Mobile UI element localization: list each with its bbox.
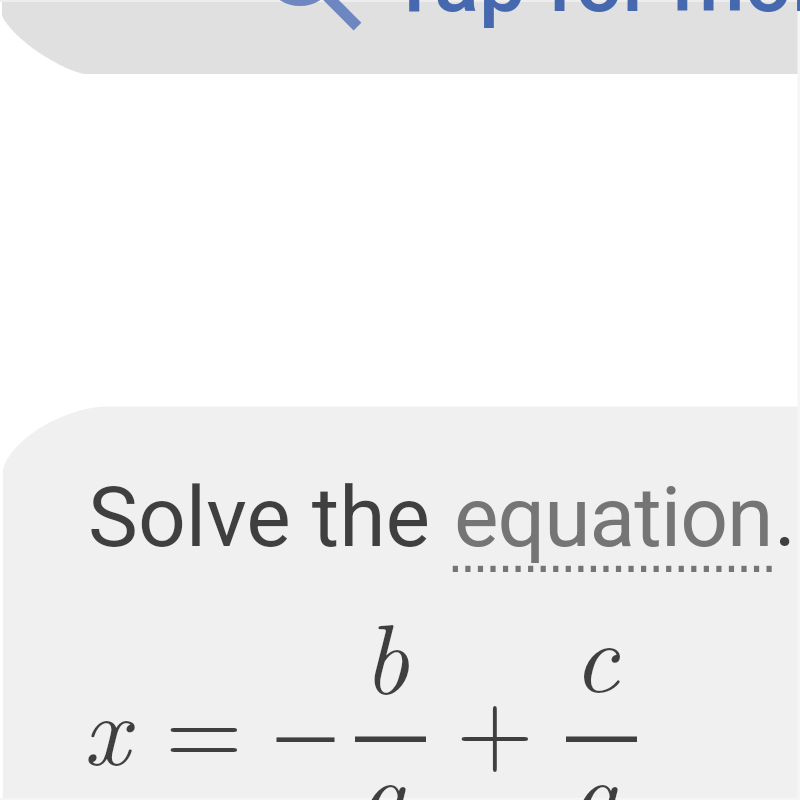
button[interactable] <box>3 407 800 800</box>
button[interactable]: equation <box>454 468 773 566</box>
staticText: + <box>456 651 534 793</box>
staticText: a <box>358 716 410 800</box>
staticText: a <box>570 716 622 800</box>
staticText: Tap for more <box>389 0 800 31</box>
staticText: equation <box>454 468 773 566</box>
staticText: Solve the <box>88 468 451 566</box>
button[interactable] <box>2 0 800 74</box>
staticText: = <box>165 652 243 794</box>
staticText: x <box>83 652 130 794</box>
staticText: c <box>573 579 619 721</box>
staticText: b <box>363 581 409 723</box>
other: Search <box>255 0 365 35</box>
staticText: . <box>774 468 797 566</box>
